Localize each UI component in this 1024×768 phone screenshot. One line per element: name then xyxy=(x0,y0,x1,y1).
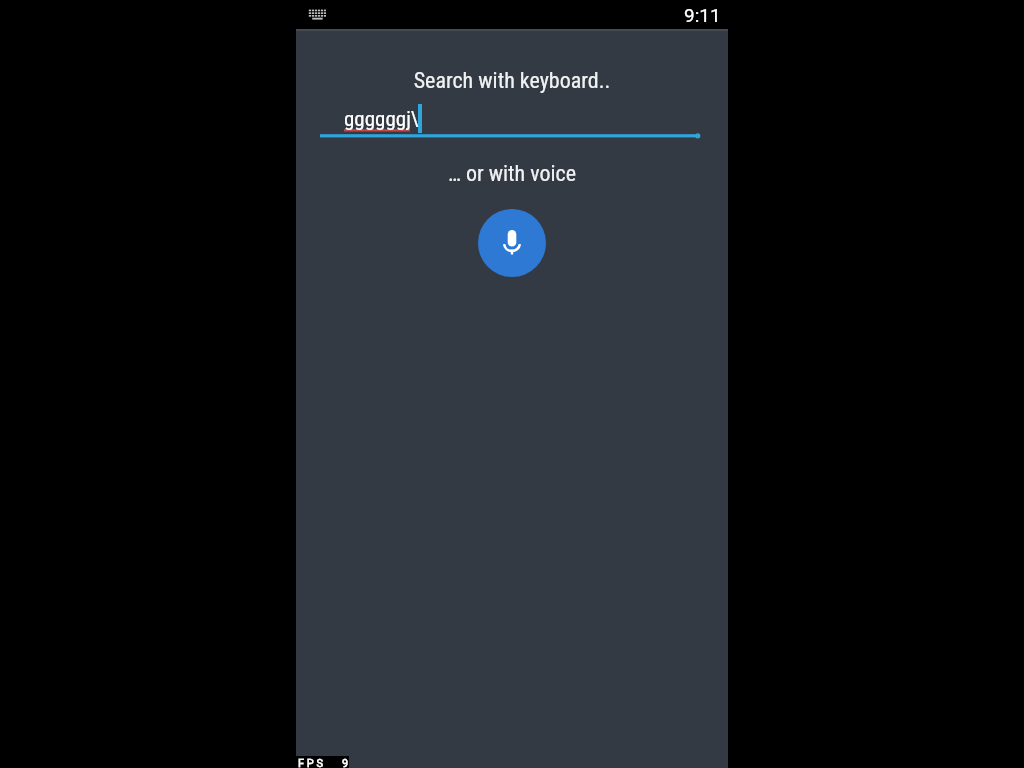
button[interactable]: Search by voice xyxy=(478,209,546,277)
staticText: Search with keyboard.. xyxy=(296,68,728,94)
staticText: F P S xyxy=(298,757,324,768)
staticText: 9:11 xyxy=(684,4,721,26)
button[interactable]: Show keyboard layout xyxy=(308,9,327,20)
button[interactable]: ggggggj\ xyxy=(320,101,704,141)
staticText: ggggggj\ xyxy=(344,107,419,132)
staticText: … or with voice xyxy=(296,161,728,187)
staticText: 9 xyxy=(342,757,349,768)
